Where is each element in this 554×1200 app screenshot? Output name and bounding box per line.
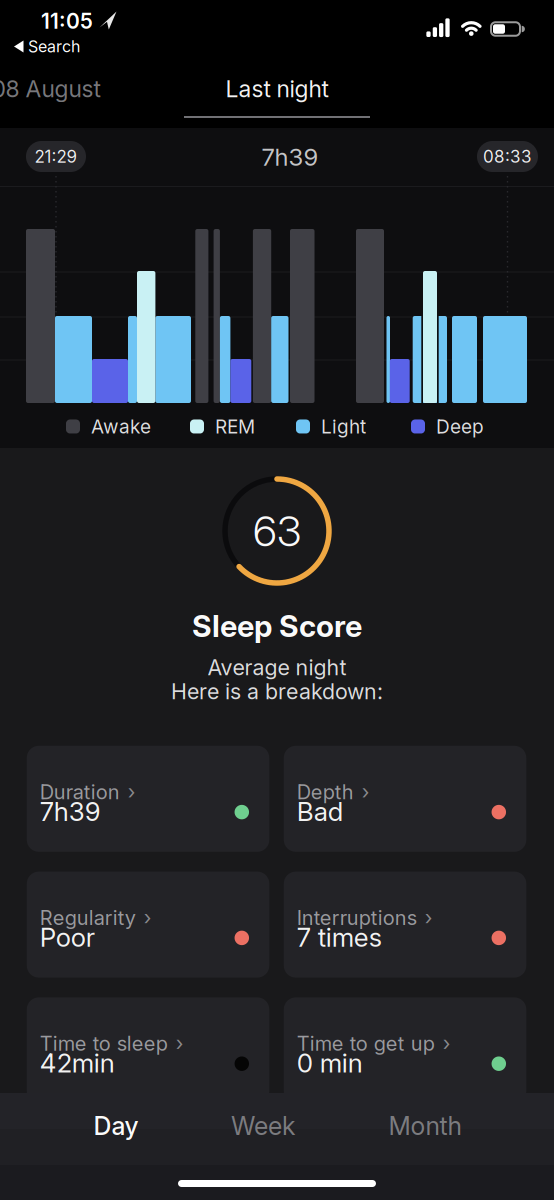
staticText: › [176, 1031, 184, 1056]
staticText: Time to sleep [40, 1031, 168, 1056]
staticText: Last night [225, 75, 328, 103]
staticText: REM [215, 415, 255, 438]
staticText: Poor [40, 922, 95, 953]
button[interactable]: Regularity [27, 872, 269, 978]
staticText: 0 min [297, 1047, 363, 1079]
staticText: 63 [253, 506, 301, 556]
button[interactable]: Interruptions [284, 872, 526, 978]
button[interactable]: Back to Search [0, 0, 90, 60]
staticText: Time to get up [297, 1031, 435, 1056]
button[interactable]: Time to sleep [27, 997, 269, 1103]
staticText: 7h39 [261, 142, 318, 171]
staticText: Duration [40, 780, 120, 804]
staticText: › [425, 906, 433, 930]
staticText: Regularity [40, 906, 136, 930]
staticText: Sleep Score [192, 608, 362, 644]
button[interactable]: Time to get up [284, 997, 526, 1103]
button[interactable]: Last night [207, 72, 347, 106]
button[interactable]: Month [370, 1101, 480, 1151]
staticText: Day [93, 1111, 138, 1141]
button[interactable]: Depth [284, 746, 526, 852]
staticText: Light [321, 415, 366, 438]
button[interactable]: Day [66, 1101, 166, 1151]
staticText: Awake [91, 415, 151, 438]
staticText: 42min [40, 1047, 115, 1079]
staticText: Bad [297, 796, 344, 827]
staticText: 21:29 [34, 146, 77, 167]
staticText: 08 August [0, 75, 100, 103]
button[interactable]: Week [213, 1101, 313, 1151]
staticText: 7h39 [40, 796, 101, 827]
staticText: 08:33 [483, 146, 532, 167]
staticText: Average night [207, 654, 346, 680]
staticText: Here is a breakdown: [171, 678, 383, 704]
staticText: › [443, 1031, 451, 1056]
staticText: Month [388, 1111, 461, 1141]
staticText: Deep [436, 415, 484, 438]
button[interactable]: 08 August [0, 72, 131, 106]
button[interactable]: Duration [27, 746, 269, 852]
staticText: 11:05 [41, 8, 93, 34]
staticText: Search [28, 37, 80, 56]
staticText: › [128, 780, 136, 804]
staticText: Week [231, 1111, 295, 1141]
staticText: 7 times [297, 922, 382, 953]
staticText: › [144, 906, 152, 930]
staticText: Depth [297, 780, 354, 804]
staticText: Interruptions [297, 906, 417, 930]
staticText: › [362, 780, 370, 804]
